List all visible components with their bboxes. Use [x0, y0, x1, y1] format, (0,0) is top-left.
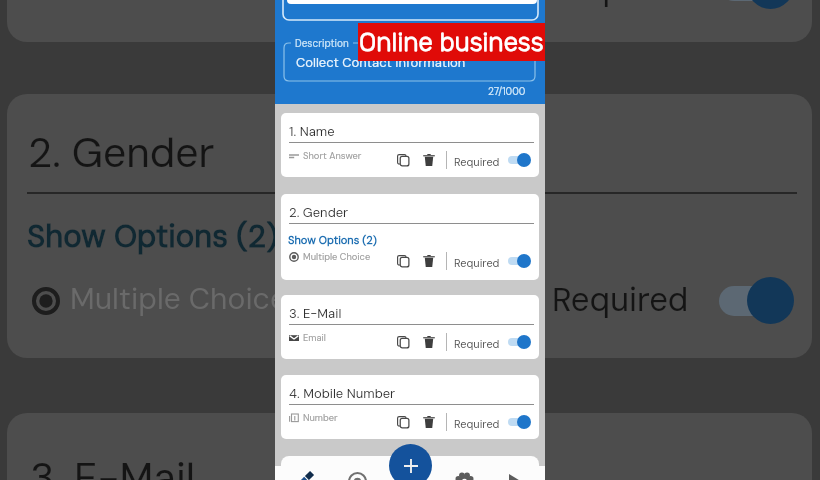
button[interactable]: Duplicate — [394, 333, 412, 351]
button[interactable]: Delete — [420, 252, 438, 270]
button[interactable]: Delete — [420, 151, 438, 169]
staticText: Short Answer — [303, 150, 362, 162]
staticText: 4. Mobile Number — [289, 385, 396, 402]
button[interactable]: Required toggle — [506, 333, 534, 351]
staticText: 27/1000 — [488, 85, 526, 98]
button[interactable]: 1. Name — [281, 113, 539, 177]
staticText: Required — [454, 337, 500, 351]
staticText: Description — [295, 37, 349, 50]
staticText: 3. E-Mail — [289, 305, 342, 322]
staticText: Required — [454, 155, 500, 169]
staticText: Multiple Choice — [70, 279, 287, 318]
staticText: 1. Name — [289, 123, 335, 140]
button[interactable]: Duplicate — [394, 252, 412, 270]
staticText: 3. E-Mail — [30, 451, 196, 480]
staticText: Required — [454, 256, 500, 270]
staticText: Online business — [359, 27, 544, 58]
staticText: 2. Gender — [28, 126, 215, 179]
staticText: 2. Gender — [289, 204, 349, 221]
button[interactable]: Show Options (2) — [288, 233, 377, 247]
button[interactable]: 2. Gender — [281, 194, 539, 280]
staticText: Number — [303, 412, 338, 424]
staticText: Required — [552, 0, 689, 10]
staticText: Collect Contact information — [296, 54, 466, 71]
button[interactable]: Send — [504, 467, 532, 480]
button[interactable]: Required toggle — [506, 413, 534, 431]
button[interactable]: Required toggle — [506, 151, 534, 169]
button[interactable]: Required toggle — [506, 252, 534, 270]
staticText: Show Options (2) — [27, 216, 278, 256]
button[interactable]: Preview — [343, 467, 371, 480]
button[interactable]: Duplicate — [394, 151, 412, 169]
staticText: Multiple Choice — [303, 251, 371, 263]
button[interactable]: Delete — [420, 413, 438, 431]
button[interactable]: Settings — [450, 467, 478, 480]
button[interactable]: 3. E-Mail — [281, 295, 539, 359]
button[interactable]: Delete — [420, 333, 438, 351]
button[interactable]: Add question — [389, 444, 432, 480]
button[interactable]: 4. Mobile Number — [281, 375, 539, 439]
staticText: Required — [454, 417, 500, 431]
staticText: Required — [552, 278, 689, 321]
staticText: Email — [303, 332, 326, 344]
button[interactable]: Edit — [289, 467, 317, 480]
button[interactable]: Duplicate — [394, 413, 412, 431]
